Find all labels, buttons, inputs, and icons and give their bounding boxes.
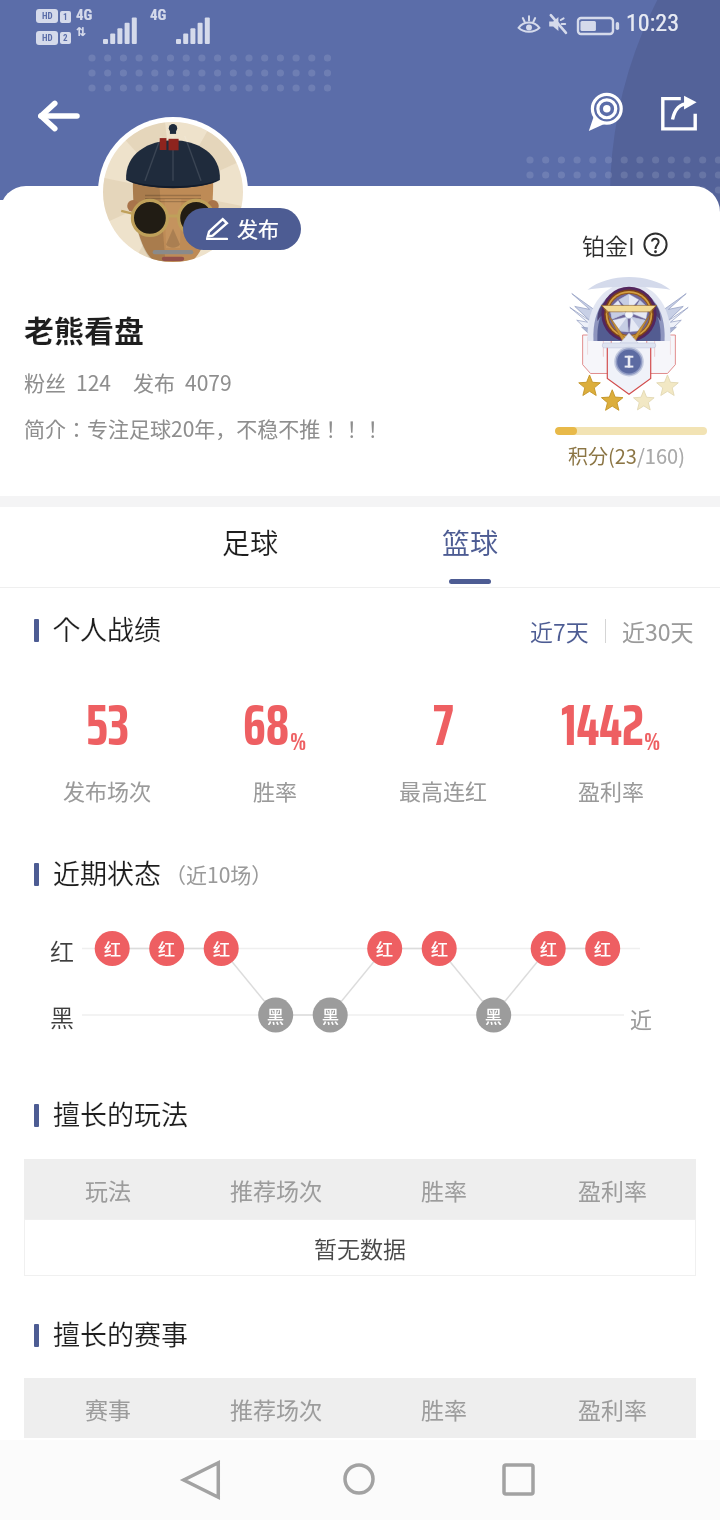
staticText: 擅长的赛事: [53, 1314, 188, 1353]
staticText: 胜率: [421, 1173, 467, 1206]
staticText: 红: [104, 936, 121, 961]
button[interactable]: 篮球: [360, 507, 580, 587]
staticText: 红: [376, 936, 393, 961]
staticText: 4079: [185, 367, 232, 397]
button[interactable]: 返回: [30, 88, 86, 144]
staticText: 最高连红: [399, 774, 488, 806]
staticText: 4G: [76, 6, 93, 24]
staticText: 玩法: [85, 1173, 131, 1206]
staticText: 124: [76, 367, 111, 397]
staticText: 黑: [322, 1003, 339, 1028]
staticText: 胜率: [421, 1392, 467, 1425]
staticText: 足球: [222, 522, 279, 563]
staticText: HD: [42, 11, 53, 22]
button[interactable]: 足球: [140, 507, 360, 587]
button[interactable]: 近7天: [526, 611, 593, 650]
staticText: 红: [594, 936, 611, 961]
button[interactable]: 近30天: [618, 611, 698, 650]
staticText: 近: [630, 1002, 653, 1034]
staticText: （近10场）: [165, 859, 273, 889]
staticText: ⇅: [76, 25, 87, 39]
staticText: 黑: [267, 1003, 284, 1028]
staticText: 暂无数据: [314, 1231, 406, 1264]
staticText: 赛事: [85, 1392, 131, 1425]
staticText: 擅长的玩法: [53, 1094, 188, 1133]
staticText: 粉丝: [24, 367, 66, 397]
staticText: 4G: [150, 6, 167, 24]
staticText: 盈利率: [578, 774, 645, 806]
staticText: 发布场次: [63, 774, 152, 806]
staticText: 10:23: [626, 9, 679, 37]
staticText: 7: [433, 679, 454, 770]
staticText: %: [644, 722, 661, 761]
staticText: 红: [540, 936, 557, 961]
staticText: 个人战绩: [53, 609, 161, 648]
staticText: 篮球: [442, 522, 499, 563]
button[interactable]: 私信: [578, 84, 634, 140]
button[interactable]: 返回: [171, 1450, 231, 1510]
staticText: 近7天: [530, 614, 589, 647]
staticText: /160): [637, 441, 685, 470]
button[interactable]: [98, 117, 248, 267]
staticText: 近期状态: [53, 853, 161, 892]
staticText: 黑: [485, 1003, 502, 1028]
button[interactable]: 发布: [183, 208, 301, 250]
staticText: 红: [213, 936, 230, 961]
button[interactable]: 铂金I: [530, 222, 720, 472]
staticText: 发布: [133, 367, 175, 397]
staticText: %: [290, 722, 307, 761]
staticText: 积分(23: [568, 441, 637, 470]
staticText: 1442: [561, 679, 644, 770]
staticText: 1: [63, 12, 68, 23]
button[interactable]: 最近任务: [488, 1449, 548, 1509]
staticText: 黑: [50, 999, 74, 1034]
staticText: 红: [158, 936, 175, 961]
staticText: 发布: [237, 213, 279, 243]
button[interactable]: 分享: [652, 86, 706, 140]
staticText: 铂金I: [582, 228, 635, 261]
staticText: 胜率: [253, 774, 298, 806]
staticText: 68: [243, 679, 290, 770]
staticText: 近30天: [622, 614, 694, 647]
staticText: 红: [431, 936, 448, 961]
staticText: 推荐场次: [230, 1173, 322, 1206]
staticText: 推荐场次: [230, 1392, 322, 1425]
staticText: 盈利率: [578, 1392, 647, 1425]
staticText: HD: [42, 33, 53, 44]
staticText: 2: [63, 33, 68, 44]
button[interactable]: 主页: [329, 1449, 389, 1509]
staticText: 盈利率: [578, 1173, 647, 1206]
staticText: 53: [86, 679, 129, 770]
staticText: 简介：专注足球20年，不稳不推！！！: [24, 413, 384, 443]
staticText: 红: [50, 933, 74, 968]
staticText: 老熊看盘: [24, 307, 144, 350]
